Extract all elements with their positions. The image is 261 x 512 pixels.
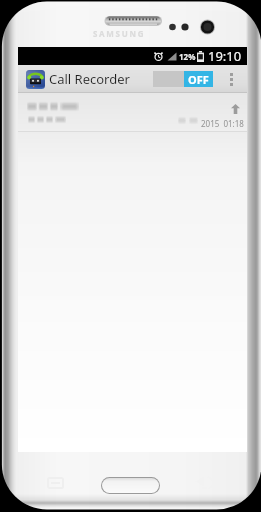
staticText: 2015 01:18 [201, 118, 244, 129]
button[interactable]: 2015 01:18 [18, 93, 247, 132]
staticText: 12% [179, 51, 196, 62]
staticText: 19:10 [208, 47, 242, 65]
button[interactable]: More options [223, 65, 239, 93]
button[interactable]: Home [102, 478, 159, 493]
staticText: OFF [188, 72, 209, 87]
button[interactable]: Call Recorder icon [26, 70, 45, 89]
button[interactable]: Recording toggle, off [153, 71, 213, 87]
staticText: SAMSUNG [93, 28, 146, 39]
staticText: Call Recorder [49, 70, 130, 88]
